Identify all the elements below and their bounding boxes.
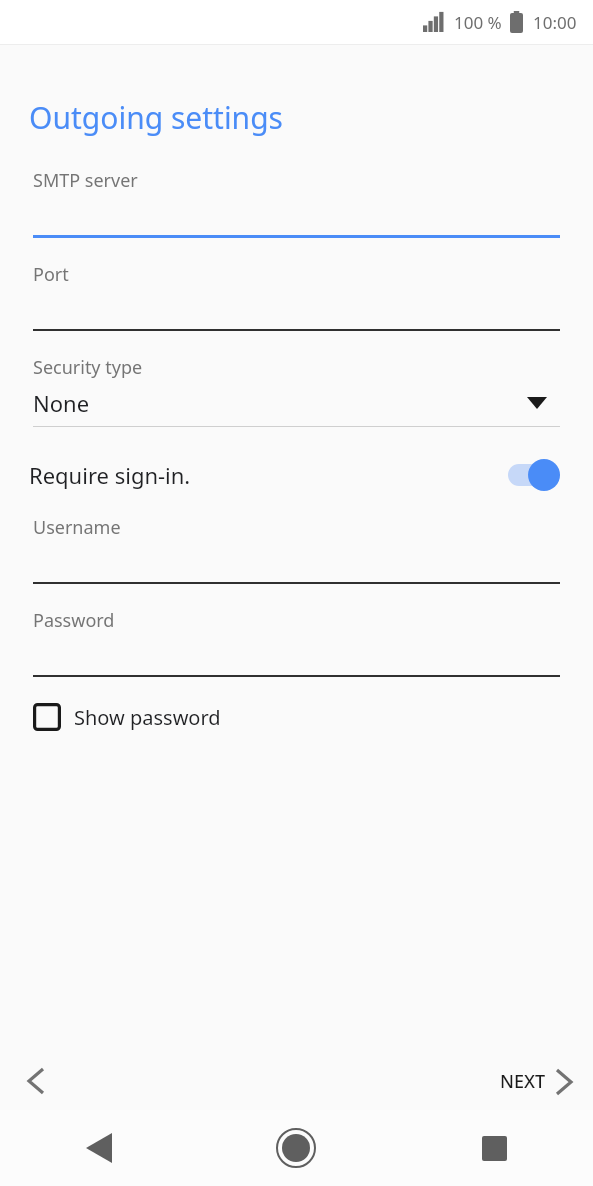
button[interactable]: NEXT: [492, 1061, 579, 1102]
staticText: 100 %: [454, 11, 502, 34]
button[interactable]: Security type: [0, 355, 593, 427]
staticText: Show password: [74, 704, 221, 731]
staticText: 10:00: [533, 11, 577, 34]
staticText: None: [33, 388, 527, 418]
staticText: Security type: [33, 355, 143, 380]
other: Open security type dropdown: [527, 397, 547, 409]
button[interactable]: Password: [0, 608, 593, 677]
button[interactable]: Previous: [14, 1059, 58, 1103]
staticText: Password: [33, 608, 115, 633]
button[interactable]: Recent apps: [395, 1110, 593, 1186]
staticText: NEXT: [500, 1069, 546, 1094]
button[interactable]: Username: [0, 515, 593, 584]
staticText: SMTP server: [33, 168, 138, 193]
staticText: Require sign-in.: [29, 460, 508, 490]
button[interactable]: Home: [197, 1110, 395, 1186]
button[interactable]: Show password: [0, 697, 593, 737]
other: Require sign-in toggle: [508, 458, 560, 492]
button[interactable]: Back: [0, 1110, 197, 1186]
staticText: Username: [33, 515, 121, 540]
staticText: Port: [33, 262, 69, 287]
button[interactable]: Require sign-in.: [0, 449, 593, 501]
button[interactable]: SMTP server: [0, 168, 593, 238]
staticText: Outgoing settings: [29, 97, 283, 138]
button[interactable]: Port: [0, 262, 593, 331]
